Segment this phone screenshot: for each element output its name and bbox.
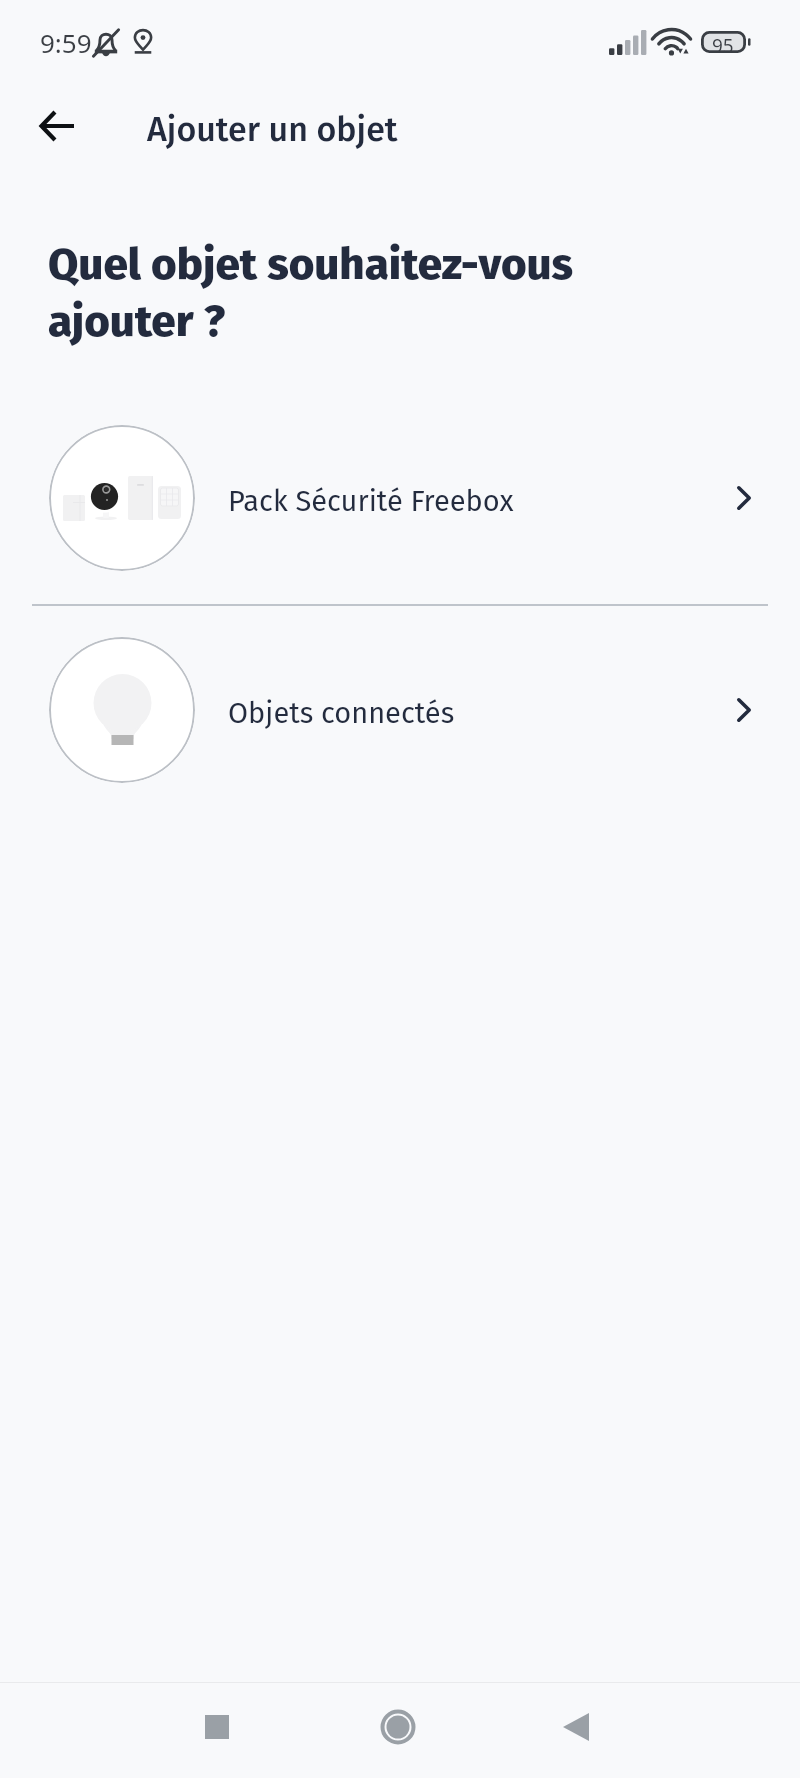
button[interactable]: Recent apps xyxy=(177,1687,257,1767)
button[interactable]: Home xyxy=(358,1687,438,1767)
staticText: 9:59 xyxy=(40,25,92,60)
button[interactable]: Back xyxy=(12,81,101,170)
staticText: 95 xyxy=(712,33,734,59)
button[interactable]: Back xyxy=(536,1687,616,1767)
button[interactable]: Pack Sécurité Freebox xyxy=(0,404,800,592)
staticText: Pack Sécurité Freebox xyxy=(228,484,514,519)
staticText: Quel objet souhaitez-vous ajouter ? xyxy=(48,238,658,347)
staticText: Objets connectés xyxy=(228,696,455,731)
staticText: Ajouter un objet xyxy=(147,109,398,150)
button[interactable]: Objets connectés xyxy=(0,616,800,804)
